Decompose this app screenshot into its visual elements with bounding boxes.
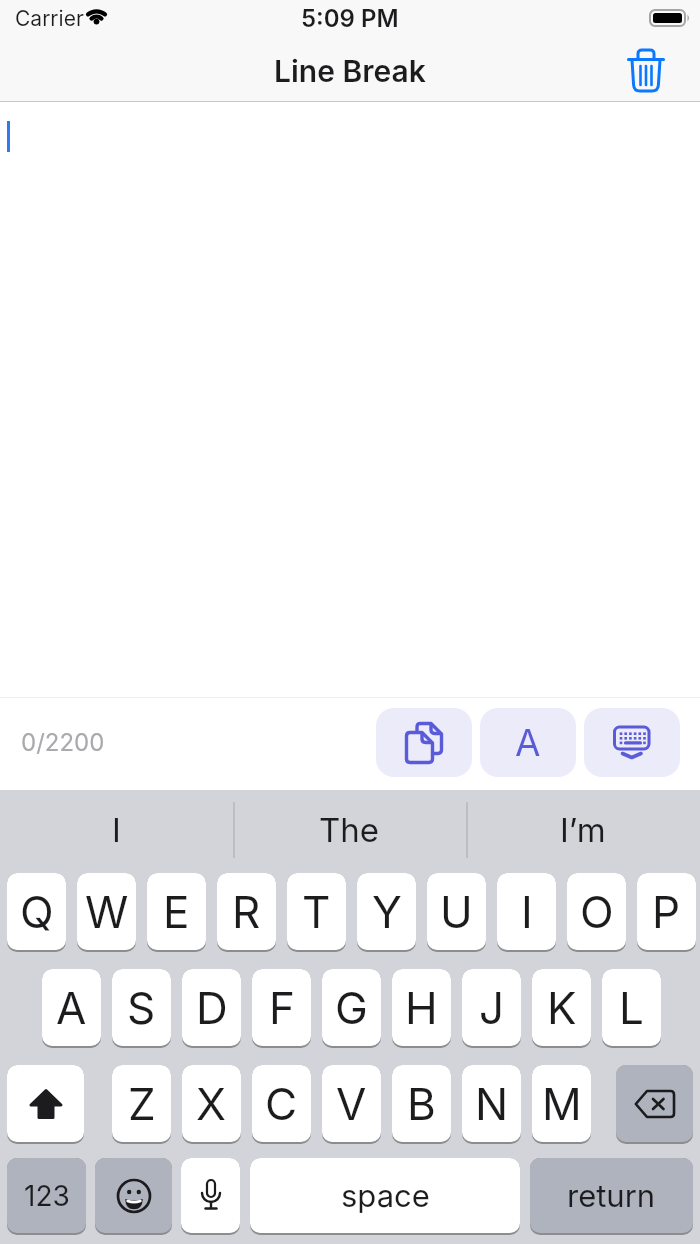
- button[interactable]: D: [182, 969, 241, 1046]
- button[interactable]: [181, 1158, 240, 1233]
- button[interactable]: Y: [357, 873, 416, 950]
- staticText: F: [269, 981, 295, 1034]
- staticText: Carrier: [15, 6, 84, 31]
- staticText: The: [319, 810, 380, 850]
- button[interactable]: A: [480, 708, 576, 777]
- button[interactable]: I’m: [466, 791, 700, 868]
- staticText: L: [619, 981, 644, 1034]
- staticText: K: [547, 981, 577, 1034]
- button[interactable]: [376, 708, 472, 777]
- staticText: A: [56, 981, 87, 1034]
- staticText: D: [196, 981, 228, 1034]
- staticText: Line Break: [274, 53, 426, 89]
- staticText: E: [163, 885, 190, 938]
- staticText: A: [515, 720, 541, 765]
- button[interactable]: Z: [112, 1065, 171, 1142]
- staticText: 5:09 PM: [301, 4, 399, 33]
- button[interactable]: L: [602, 969, 661, 1046]
- button[interactable]: P: [637, 873, 696, 950]
- button[interactable]: return: [530, 1158, 693, 1233]
- staticText: Q: [20, 885, 54, 938]
- staticText: G: [335, 981, 368, 1034]
- button[interactable]: U: [427, 873, 486, 950]
- staticText: J: [479, 981, 505, 1034]
- button[interactable]: H: [392, 969, 451, 1046]
- button[interactable]: M: [532, 1065, 591, 1142]
- button[interactable]: C: [252, 1065, 311, 1142]
- button[interactable]: I: [0, 791, 233, 868]
- staticText: P: [652, 885, 681, 938]
- button[interactable]: A: [42, 969, 101, 1046]
- staticText: I’m: [560, 810, 606, 850]
- staticText: C: [265, 1077, 298, 1130]
- button[interactable]: [95, 1158, 172, 1233]
- staticText: U: [440, 885, 473, 938]
- button[interactable]: B: [392, 1065, 451, 1142]
- staticText: H: [405, 981, 438, 1034]
- staticText: Y: [372, 885, 402, 938]
- staticText: return: [567, 1177, 656, 1215]
- button[interactable]: [618, 44, 674, 98]
- button[interactable]: O: [567, 873, 626, 950]
- button[interactable]: S: [112, 969, 171, 1046]
- button[interactable]: T: [287, 873, 346, 950]
- staticText: T: [302, 885, 331, 938]
- button[interactable]: J: [462, 969, 521, 1046]
- button[interactable]: R: [217, 873, 276, 950]
- staticText: X: [196, 1077, 227, 1130]
- button[interactable]: 123: [7, 1158, 86, 1233]
- button[interactable]: [584, 708, 680, 777]
- button[interactable]: The: [233, 791, 466, 868]
- staticText: Z: [128, 1077, 156, 1130]
- staticText: M: [542, 1077, 582, 1130]
- staticText: B: [407, 1077, 436, 1130]
- button[interactable]: F: [252, 969, 311, 1046]
- button[interactable]: N: [462, 1065, 521, 1142]
- staticText: I: [521, 885, 533, 938]
- button[interactable]: V: [322, 1065, 381, 1142]
- button[interactable]: E: [147, 873, 206, 950]
- button[interactable]: W: [77, 873, 136, 950]
- button[interactable]: G: [322, 969, 381, 1046]
- staticText: space: [341, 1177, 430, 1215]
- button[interactable]: I: [497, 873, 556, 950]
- staticText: R: [232, 885, 261, 938]
- button[interactable]: Q: [7, 873, 66, 950]
- button[interactable]: [616, 1065, 693, 1142]
- staticText: 0/2200: [21, 728, 105, 757]
- staticText: I: [112, 810, 121, 850]
- staticText: O: [580, 885, 614, 938]
- staticText: V: [336, 1077, 367, 1130]
- button[interactable]: X: [182, 1065, 241, 1142]
- button[interactable]: [7, 1065, 84, 1142]
- button[interactable]: K: [532, 969, 591, 1046]
- button[interactable]: space: [250, 1158, 520, 1233]
- staticText: 123: [24, 1179, 70, 1213]
- staticText: N: [475, 1077, 509, 1130]
- staticText: S: [127, 981, 156, 1034]
- staticText: W: [85, 885, 129, 938]
